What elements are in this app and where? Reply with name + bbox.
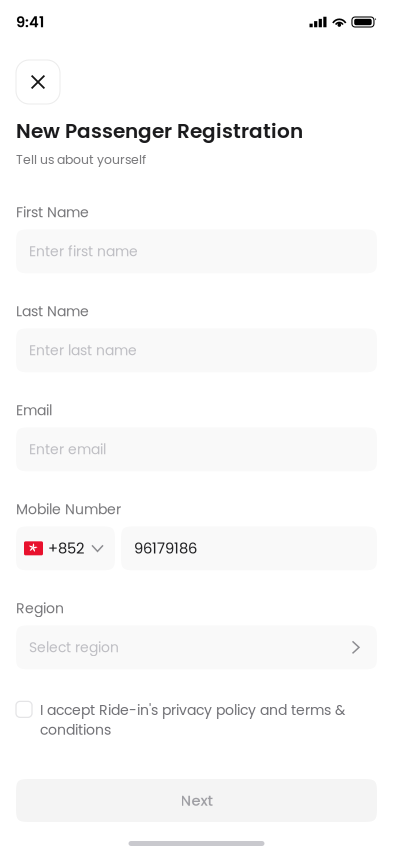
staticText: I accept Ride-in's privacy policy and te… bbox=[40, 700, 345, 740]
staticText: Last Name bbox=[16, 302, 89, 321]
staticText: +852 bbox=[48, 538, 84, 559]
staticText: 96179186 bbox=[134, 538, 197, 559]
button[interactable]: Close bbox=[16, 60, 60, 104]
staticText: 9:41 bbox=[16, 12, 44, 32]
staticText: Select region bbox=[29, 638, 119, 657]
staticText: Region bbox=[16, 599, 64, 618]
staticText: Next bbox=[180, 790, 212, 811]
staticText: Enter email bbox=[29, 440, 106, 459]
staticText: Enter first name bbox=[29, 242, 138, 261]
staticText: Email bbox=[16, 401, 52, 420]
staticText: New Passenger Registration bbox=[16, 117, 303, 145]
button[interactable]: Country code +852 bbox=[16, 526, 115, 570]
button[interactable]: Select region bbox=[16, 625, 377, 669]
staticText: Mobile Number bbox=[16, 500, 121, 519]
button[interactable]: I accept Ride-in's privacy policy and te… bbox=[16, 700, 377, 740]
staticText: First Name bbox=[16, 203, 89, 222]
button[interactable]: Next bbox=[16, 779, 377, 822]
staticText: Tell us about yourself bbox=[16, 151, 146, 168]
staticText: Enter last name bbox=[29, 341, 137, 360]
